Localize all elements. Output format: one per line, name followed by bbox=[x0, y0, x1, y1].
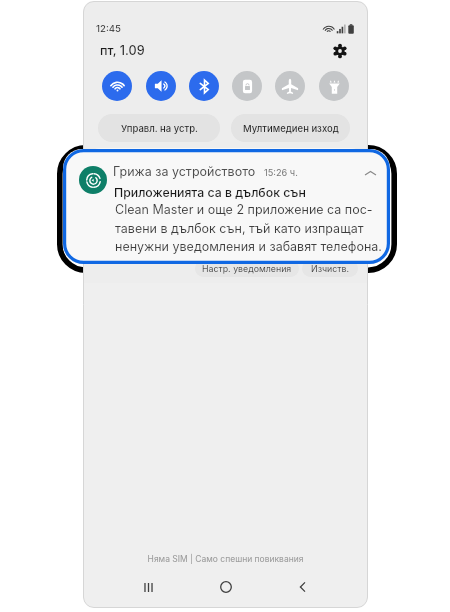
staticText: Настр. уведомления bbox=[202, 263, 292, 274]
staticText: Няма SIM | Само спешни повиквания bbox=[83, 554, 368, 564]
button[interactable]: Home bbox=[214, 576, 238, 598]
button[interactable]: Airplane mode bbox=[275, 71, 305, 101]
button[interactable]: Изчиств. bbox=[302, 260, 358, 277]
button[interactable]: Collapse notification bbox=[362, 165, 379, 182]
staticText: Изчиств. bbox=[311, 263, 350, 274]
staticText: Приложенията са в дълбок сън bbox=[114, 185, 306, 200]
button[interactable]: Bluetooth bbox=[189, 71, 219, 101]
button[interactable]: Flashlight bbox=[319, 71, 349, 101]
button[interactable]: Sound bbox=[146, 71, 176, 101]
staticText: 12:45 bbox=[96, 23, 122, 35]
staticText: Clean Master и още 2 приложение са пос- … bbox=[115, 202, 382, 254]
staticText: Грижа за устройството bbox=[113, 164, 256, 179]
button[interactable]: Wi-Fi bbox=[102, 71, 132, 101]
button[interactable]: Back bbox=[291, 576, 315, 598]
button[interactable]: Recents bbox=[136, 576, 160, 598]
staticText: Мултимедиен изход bbox=[243, 123, 339, 134]
staticText: Управл. на устр. bbox=[121, 123, 198, 134]
staticText: 15:26 ч. bbox=[264, 167, 298, 178]
button[interactable]: Settings bbox=[330, 41, 350, 61]
button[interactable]: Screen lock bbox=[232, 71, 262, 101]
staticText: пт, 1.09 bbox=[100, 43, 145, 58]
button[interactable]: Грижа за устройството bbox=[63, 149, 390, 264]
button[interactable] bbox=[88, 148, 363, 258]
button[interactable]: Настр. уведомления bbox=[195, 260, 299, 277]
button[interactable]: Управл. на устр. bbox=[98, 114, 220, 142]
button[interactable]: Мултимедиен изход bbox=[231, 114, 350, 142]
